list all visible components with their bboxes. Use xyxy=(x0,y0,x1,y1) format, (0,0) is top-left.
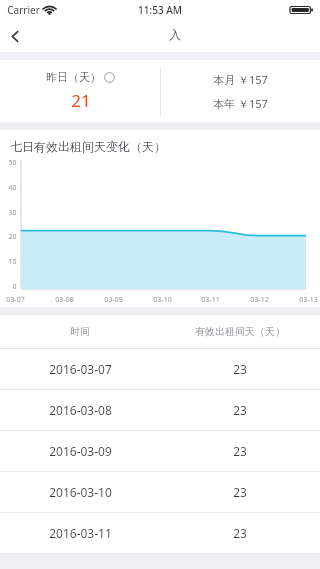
button[interactable]: 2016-03-07 xyxy=(0,349,320,389)
staticText: 23 xyxy=(233,443,247,459)
button[interactable]: 2016-03-09 xyxy=(0,431,320,471)
staticText: Carrier xyxy=(7,3,40,17)
staticText: 03-07 xyxy=(6,295,25,305)
button[interactable]: 2016-03-10 xyxy=(0,472,320,512)
staticText: 2016-03-10 xyxy=(49,484,112,500)
staticText: 2016-03-11 xyxy=(49,525,112,541)
staticText: 10 xyxy=(8,257,17,267)
staticText: 2016-03-09 xyxy=(49,443,112,459)
staticText: 40 xyxy=(8,183,17,193)
staticText: 本年 ￥157 xyxy=(213,96,268,111)
staticText: 23 xyxy=(233,402,247,418)
staticText: 03-10 xyxy=(153,295,172,305)
staticText: 03-09 xyxy=(104,295,123,305)
staticText: 昨日（天） xyxy=(46,70,101,84)
staticText: 七日有效出租间天变化（天） xyxy=(10,139,166,154)
staticText: 23 xyxy=(233,361,247,377)
staticText: 11:53 AM xyxy=(138,3,182,17)
staticText: 03-08 xyxy=(55,295,74,305)
staticText: 入 xyxy=(169,27,181,42)
staticText: 23 xyxy=(233,525,247,541)
button[interactable]: 昨日（天） xyxy=(0,60,160,122)
staticText: 30 xyxy=(8,208,17,218)
staticText: 03-12 xyxy=(250,295,269,305)
button[interactable]: 2016-03-08 xyxy=(0,390,320,430)
button[interactable]: 本月 ￥157 xyxy=(161,60,320,122)
button[interactable]: 入 xyxy=(30,20,320,52)
staticText: 20 xyxy=(8,232,17,242)
staticText: 21 xyxy=(71,89,91,112)
staticText: 23 xyxy=(233,484,247,500)
button[interactable]: 2016-03-11 xyxy=(0,513,320,553)
staticText: 2016-03-08 xyxy=(49,402,112,418)
staticText: 时间 xyxy=(70,325,90,338)
staticText: 本月 ￥157 xyxy=(213,72,268,87)
staticText: 03-11 xyxy=(201,295,220,305)
staticText: 0 xyxy=(12,282,17,292)
staticText: 有效出租间天（天） xyxy=(195,325,285,338)
staticText: 2016-03-07 xyxy=(49,361,112,377)
staticText: 03-13 xyxy=(299,295,318,305)
button[interactable]: Back xyxy=(0,20,30,52)
staticText: 50 xyxy=(8,158,17,168)
